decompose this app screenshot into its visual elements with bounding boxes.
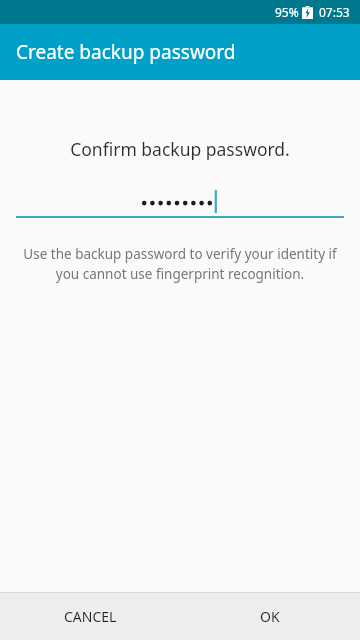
staticText: Create backup password <box>16 39 236 65</box>
staticText: CANCEL <box>64 607 117 626</box>
other: Battery charging <box>302 6 313 19</box>
staticText: 07:53 <box>319 4 350 20</box>
button[interactable] <box>0 182 360 216</box>
staticText: Use the backup password to verify your i… <box>22 245 338 283</box>
staticText: OK <box>260 607 280 626</box>
staticText: Confirm backup password. <box>0 137 360 161</box>
button[interactable]: CANCEL <box>0 593 180 640</box>
button[interactable]: OK <box>180 593 360 640</box>
staticText: 95% <box>275 4 299 20</box>
